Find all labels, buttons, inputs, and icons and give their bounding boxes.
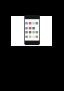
button[interactable]: Photo: [0, 0, 64, 91]
